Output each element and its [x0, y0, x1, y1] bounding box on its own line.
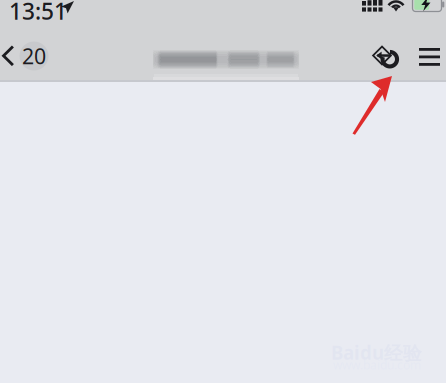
staticText: 20 — [22, 42, 46, 70]
button[interactable]: Share — [367, 37, 405, 77]
button[interactable]: Menu — [414, 37, 445, 77]
button[interactable]: 20 — [0, 36, 51, 76]
staticText: 13:51 — [9, 0, 67, 26]
